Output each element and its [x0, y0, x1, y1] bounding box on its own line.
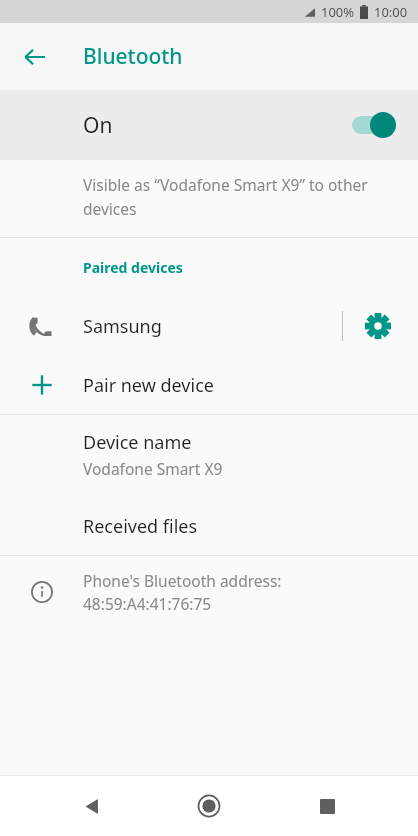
button[interactable]: Pair new device — [0, 356, 418, 414]
staticText: Pair new device — [83, 373, 214, 398]
staticText: Bluetooth — [83, 42, 183, 71]
button[interactable]: Samsung — [0, 296, 418, 356]
button[interactable]: Received files — [0, 497, 418, 555]
button[interactable]: Back — [14, 36, 56, 78]
button[interactable]: Device name — [0, 415, 418, 497]
button[interactable]: Phone's Bluetooth address: — [0, 556, 418, 628]
button[interactable]: Recents — [300, 779, 354, 833]
button[interactable]: Device settings — [354, 302, 402, 350]
staticText: Vodafone Smart X9 — [83, 458, 223, 479]
button[interactable]: Visible as “Vodafone Smart X9” to other — [0, 160, 418, 237]
staticText: Visible as “Vodafone Smart X9” to other — [83, 174, 368, 195]
button[interactable]: On — [0, 90, 418, 160]
staticText: Phone's Bluetooth address: — [83, 570, 282, 591]
button[interactable]: Back — [64, 779, 118, 833]
staticText: On — [83, 111, 113, 140]
staticText: Samsung — [83, 314, 162, 339]
staticText: 100% — [321, 3, 355, 21]
staticText: Paired devices — [83, 258, 183, 277]
staticText: Received files — [83, 514, 198, 539]
staticText: 48:59:A4:41:76:75 — [83, 593, 212, 614]
staticText: Device name — [83, 430, 192, 455]
button[interactable]: Home — [182, 779, 236, 833]
staticText: 10:00 — [374, 3, 408, 21]
staticText: devices — [83, 198, 137, 219]
